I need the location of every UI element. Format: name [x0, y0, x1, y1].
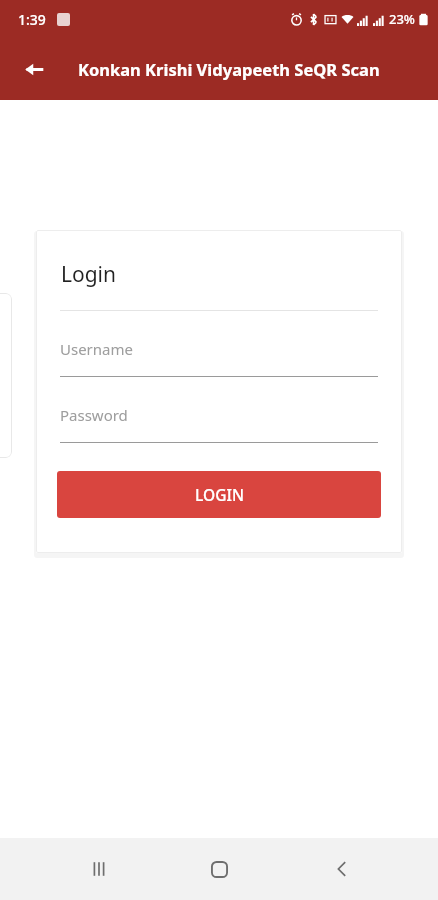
- staticText: Username: [60, 339, 133, 359]
- button[interactable]: Home: [197, 847, 241, 891]
- button[interactable]: Password: [60, 405, 378, 443]
- button[interactable]: Recent apps: [77, 847, 121, 891]
- button[interactable]: Back: [320, 847, 364, 891]
- button[interactable]: Username: [60, 339, 378, 377]
- staticText: Konkan Krishi Vidyapeeth SeQR Scan: [78, 58, 380, 80]
- staticText: Login: [61, 260, 117, 289]
- staticText: Password: [60, 405, 128, 425]
- button[interactable]: LOGIN: [57, 471, 381, 518]
- staticText: LOGIN: [195, 484, 244, 505]
- staticText: 1:39: [18, 10, 46, 29]
- button[interactable]: Back: [14, 49, 54, 89]
- staticText: 23%: [389, 10, 415, 28]
